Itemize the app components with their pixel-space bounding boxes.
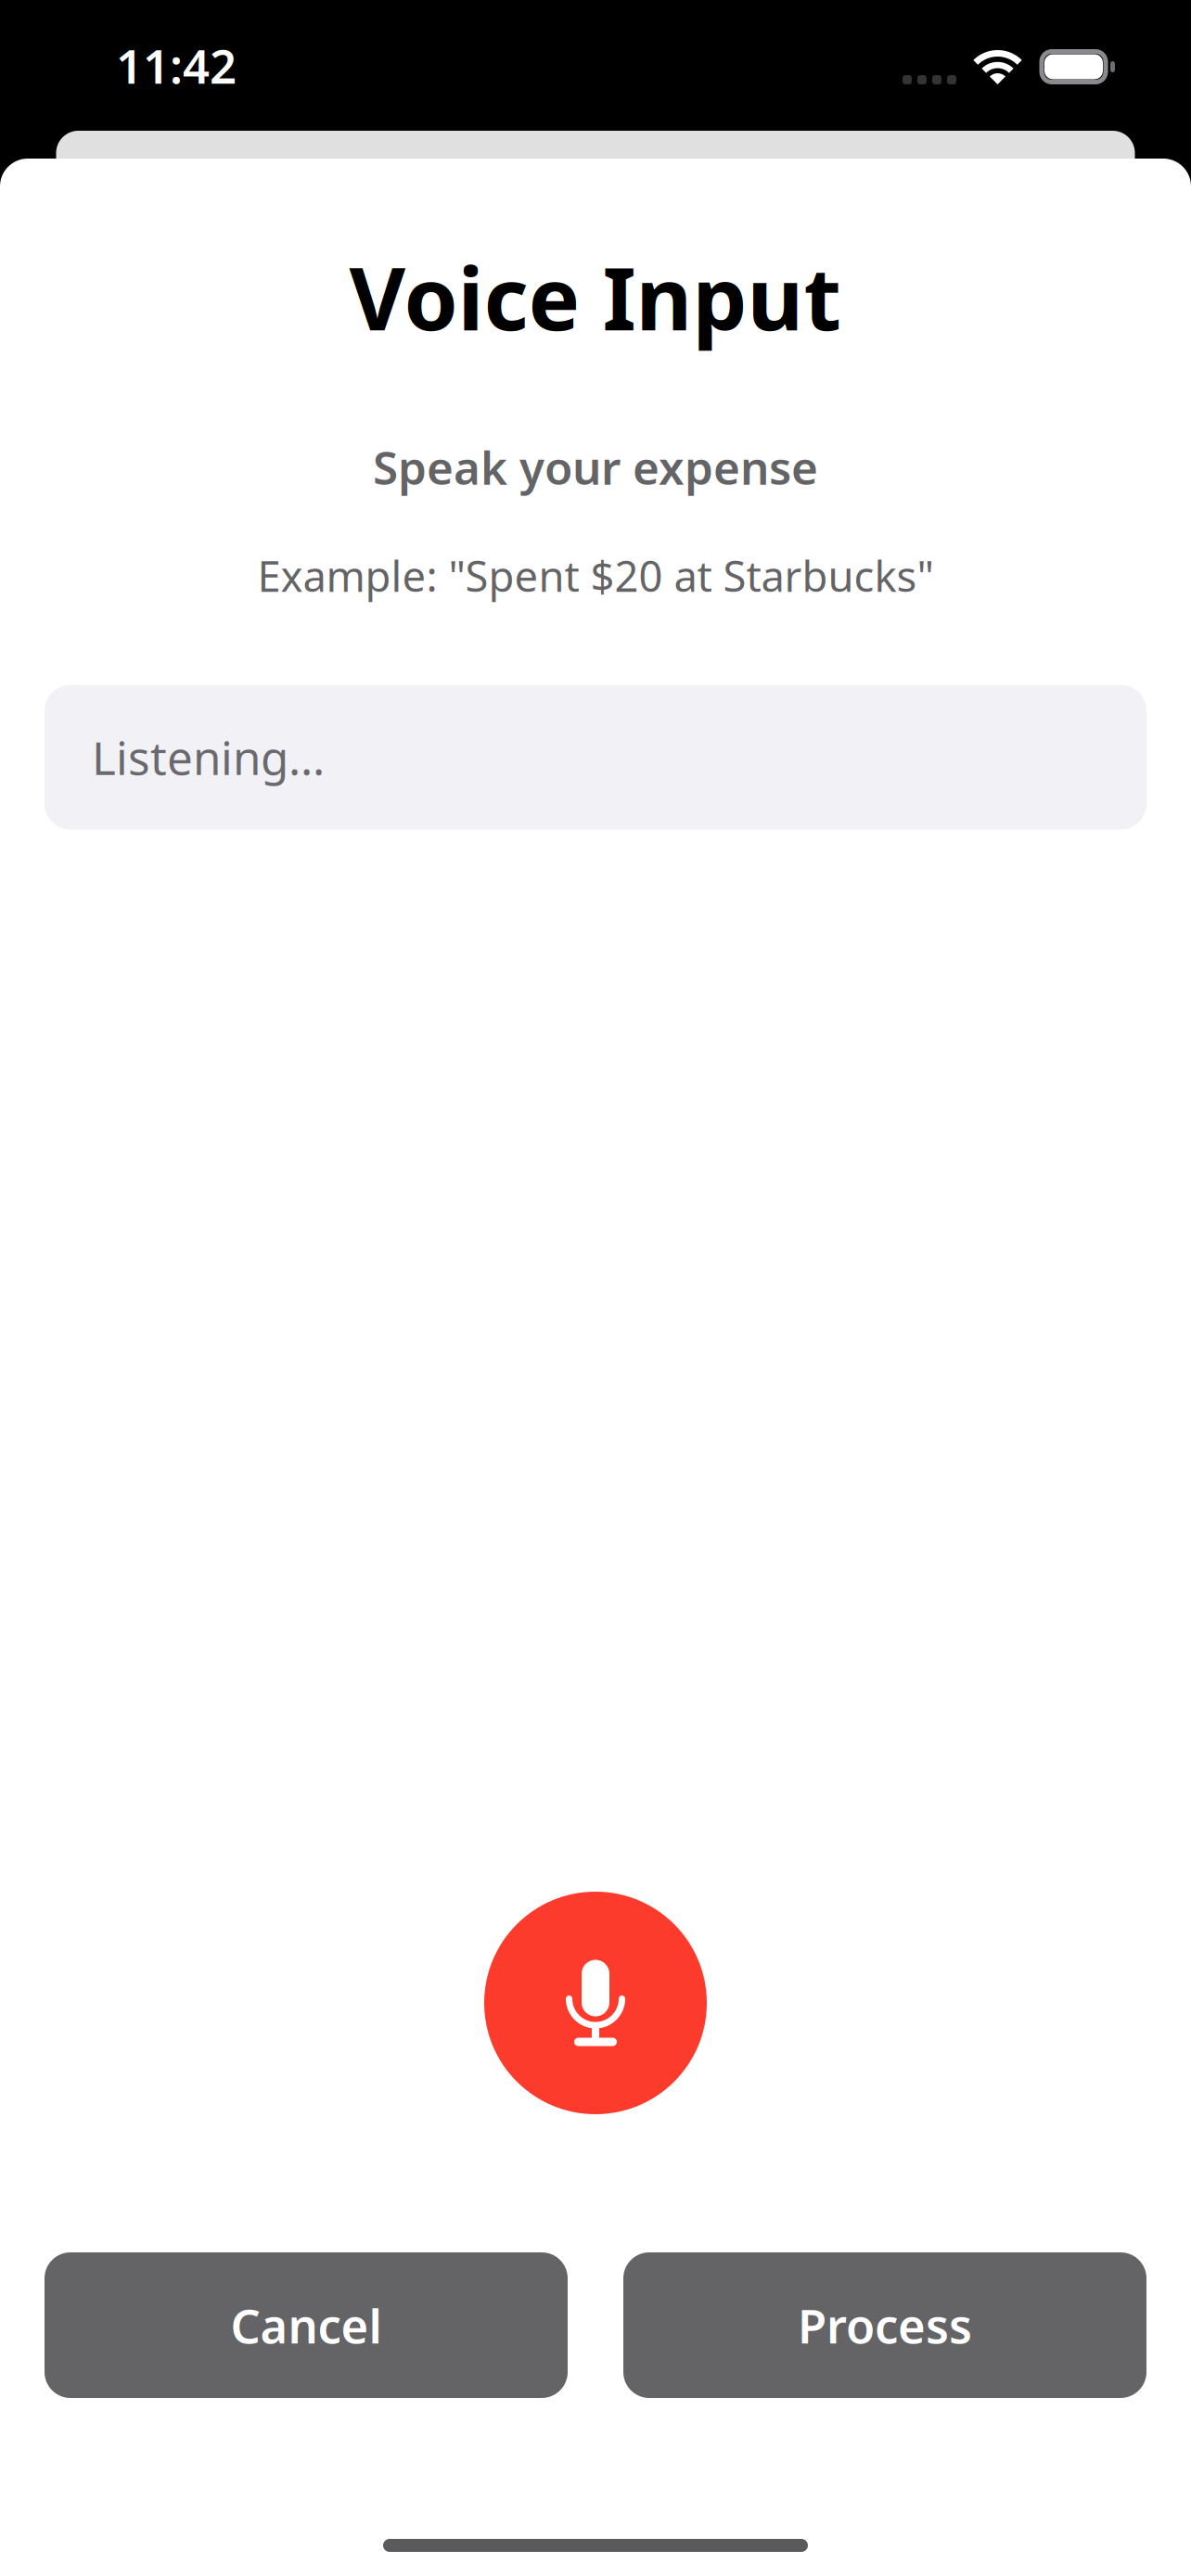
staticText: Cancel	[231, 2294, 382, 2356]
button[interactable]: Process	[623, 2252, 1146, 2398]
staticText: 11:42	[116, 34, 237, 97]
staticText: Example: "Spent $20 at Starbucks"	[257, 548, 934, 603]
staticText: Speak your expense	[373, 437, 818, 497]
button[interactable]: Cancel	[45, 2252, 568, 2398]
button[interactable]: Start recording	[484, 1892, 707, 2114]
staticText: Voice Input	[349, 239, 842, 354]
staticText: Listening...	[92, 727, 325, 788]
staticText: Process	[798, 2294, 972, 2356]
